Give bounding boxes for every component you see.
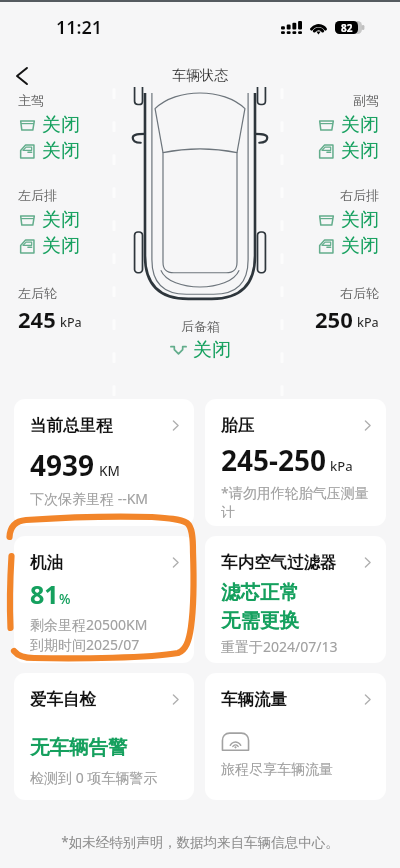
staticText: % — [59, 590, 71, 608]
staticText: 滤芯正常 — [221, 580, 299, 605]
button[interactable]: 关闭 — [18, 208, 80, 232]
staticText: 无需更换 — [221, 608, 299, 633]
staticText: 81 — [30, 577, 59, 611]
button[interactable]: 关闭 — [317, 139, 379, 163]
staticText: 关闭 — [42, 139, 80, 163]
staticText: 11:21 — [56, 15, 103, 40]
staticText: 关闭 — [42, 208, 80, 232]
staticText: 4939 — [30, 446, 95, 484]
staticText: 主驾 — [18, 92, 44, 108]
staticText: 关闭 — [341, 234, 379, 258]
staticText: 车辆流量 — [221, 689, 361, 710]
button[interactable]: 关闭 — [317, 234, 379, 258]
staticText: 关闭 — [341, 208, 379, 232]
staticText: 245 — [18, 304, 56, 334]
staticText: kPa — [330, 457, 353, 475]
button[interactable]: 关闭 — [317, 208, 379, 232]
staticText: 关闭 — [341, 113, 379, 137]
staticText: kPa — [60, 314, 82, 331]
staticText: *请勿用作轮胎气压测量计 — [221, 483, 374, 518]
staticText: 250 — [315, 304, 353, 334]
button[interactable]: 关闭 — [18, 139, 80, 163]
staticText: 左后轮 — [18, 285, 57, 301]
staticText: 当前总里程 — [30, 415, 169, 436]
staticText: 检测到 0 项车辆警示 — [30, 768, 158, 787]
button[interactable]: 关闭 — [18, 234, 80, 258]
button[interactable]: 爱车自检 — [14, 673, 194, 800]
staticText: *如未经特别声明，数据均来自车辆信息中心。 — [14, 833, 386, 851]
staticText: 关闭 — [193, 338, 231, 362]
staticText: 胎压 — [221, 415, 361, 436]
staticText: 剩余里程20500KM — [30, 615, 148, 634]
staticText: 左后排 — [18, 187, 57, 203]
staticText: 82 — [341, 21, 353, 34]
staticText: 无车辆告警 — [30, 735, 128, 760]
button[interactable]: 关闭 — [169, 338, 231, 362]
staticText: 245-250 — [221, 441, 327, 479]
staticText: 机油 — [30, 552, 169, 573]
staticText: 关闭 — [42, 234, 80, 258]
staticText: kPa — [357, 314, 379, 331]
staticText: 到期时间2025/07 — [30, 635, 140, 654]
button[interactable]: 关闭 — [317, 113, 379, 137]
staticText: 后备箱 — [181, 318, 220, 334]
staticText: 旅程尽享车辆流量 — [221, 761, 333, 779]
button[interactable]: 车内空气过滤器 — [205, 536, 386, 663]
staticText: 右后轮 — [340, 285, 379, 301]
button[interactable]: 胎压 — [205, 399, 386, 526]
staticText: 重置于2024/07/13 — [221, 637, 338, 655]
button[interactable]: 车辆流量 — [205, 673, 386, 800]
button[interactable]: Back — [2, 57, 40, 95]
staticText: KM — [99, 462, 120, 480]
staticText: 右后排 — [340, 187, 379, 203]
staticText: 关闭 — [341, 139, 379, 163]
button[interactable]: 关闭 — [18, 113, 80, 137]
staticText: 爱车自检 — [30, 689, 169, 710]
staticText: 下次保养里程 --KM — [30, 489, 149, 508]
button[interactable]: 当前总里程 — [14, 399, 194, 526]
staticText: 车辆状态 — [172, 67, 228, 85]
staticText: 副驾 — [353, 92, 379, 108]
button[interactable]: 机油 — [14, 536, 194, 663]
staticText: 关闭 — [42, 113, 80, 137]
staticText: 车内空气过滤器 — [221, 552, 361, 573]
